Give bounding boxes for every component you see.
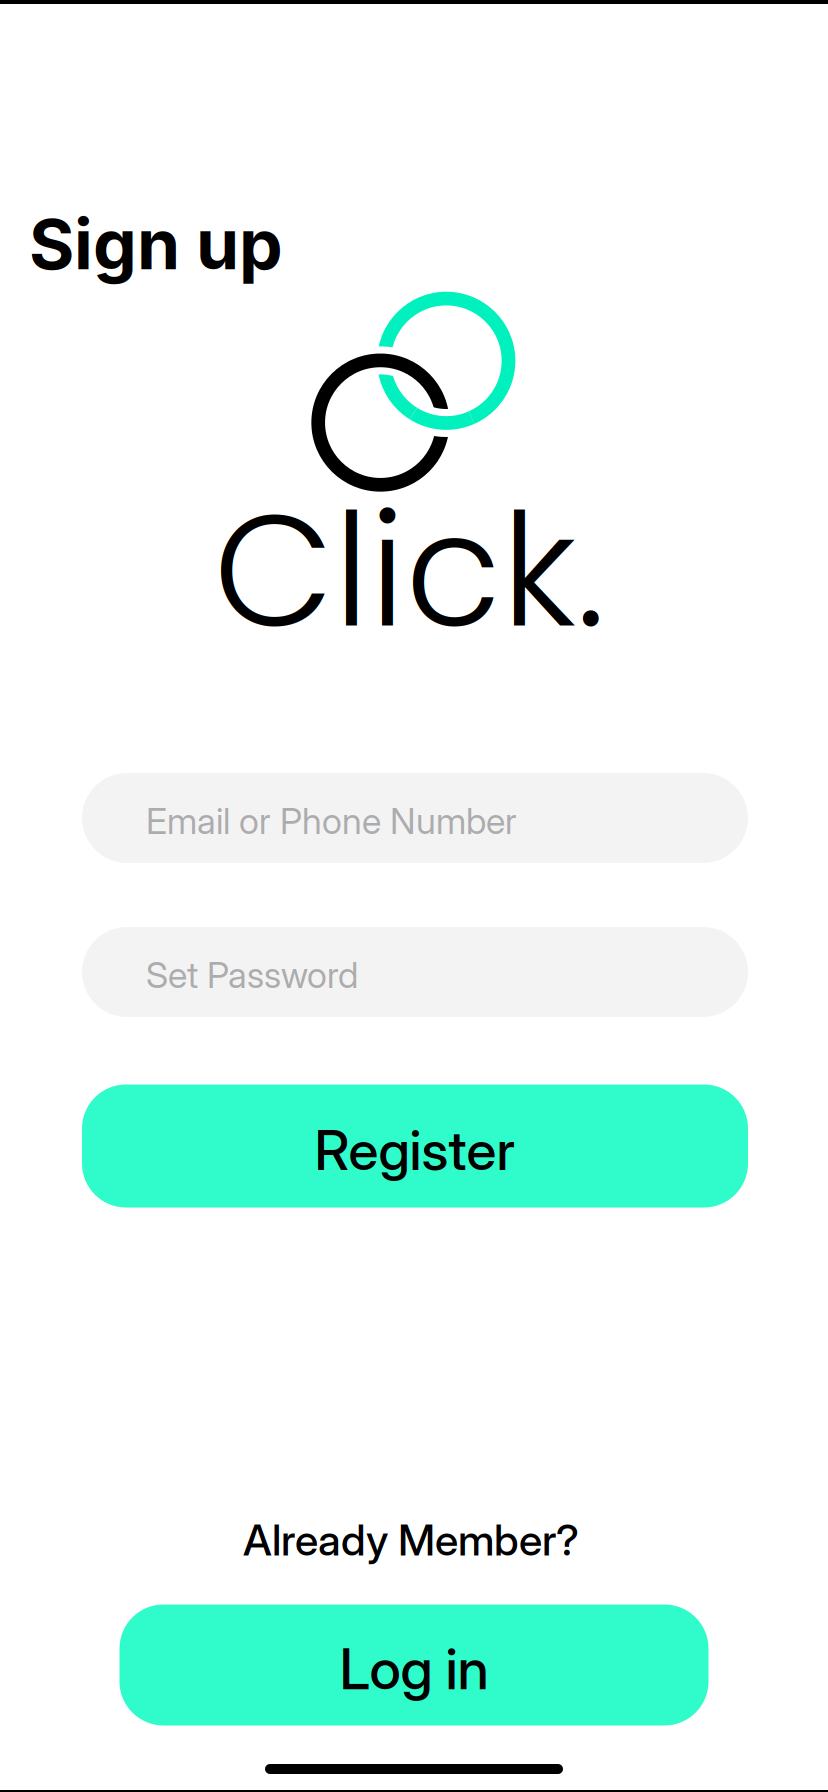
button[interactable]: Set Password: [82, 927, 748, 1017]
button[interactable]: Log in: [119, 1604, 708, 1725]
staticText: Already Member?: [243, 1514, 579, 1566]
button[interactable]: Register: [82, 1084, 748, 1207]
button[interactable]: Email or Phone Number: [82, 773, 748, 863]
staticText: Sign up: [29, 202, 283, 286]
staticText: Register: [314, 1117, 515, 1183]
staticText: Set Password: [146, 953, 358, 997]
staticText: Email or Phone Number: [146, 799, 517, 843]
staticText: Log in: [339, 1635, 488, 1703]
staticText: Click.: [213, 462, 604, 680]
